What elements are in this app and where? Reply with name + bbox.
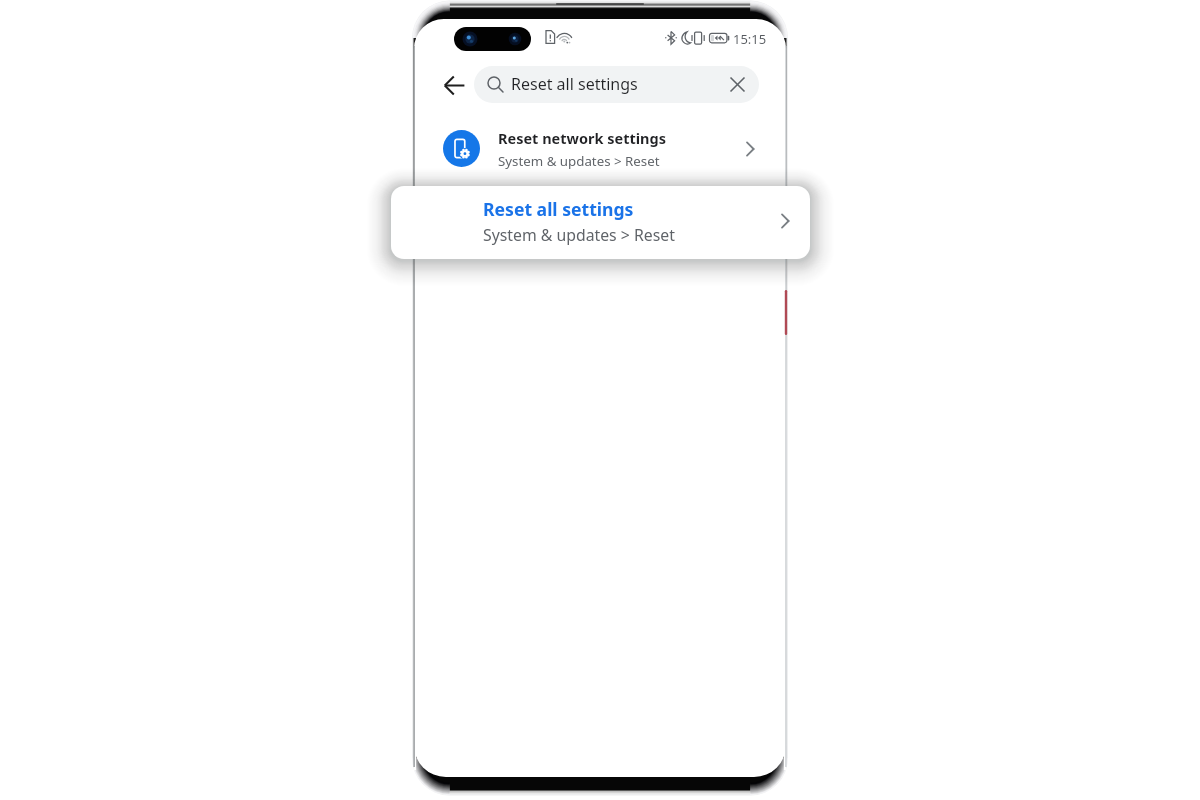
staticText: System & updates > Reset xyxy=(498,152,660,170)
button[interactable]: Reset all settings xyxy=(474,66,759,103)
staticText: Reset all settings xyxy=(483,197,634,221)
button[interactable]: Clear search xyxy=(724,71,751,98)
staticText: Reset all settings xyxy=(511,73,638,95)
staticText: System & updates > Reset xyxy=(483,224,675,246)
button[interactable]: Back xyxy=(434,65,474,105)
button[interactable]: Reset all settings xyxy=(391,186,810,259)
staticText: Reset network settings xyxy=(498,128,666,148)
button[interactable]: Reset network settings xyxy=(415,119,786,185)
staticText: 15:15 xyxy=(733,30,767,48)
